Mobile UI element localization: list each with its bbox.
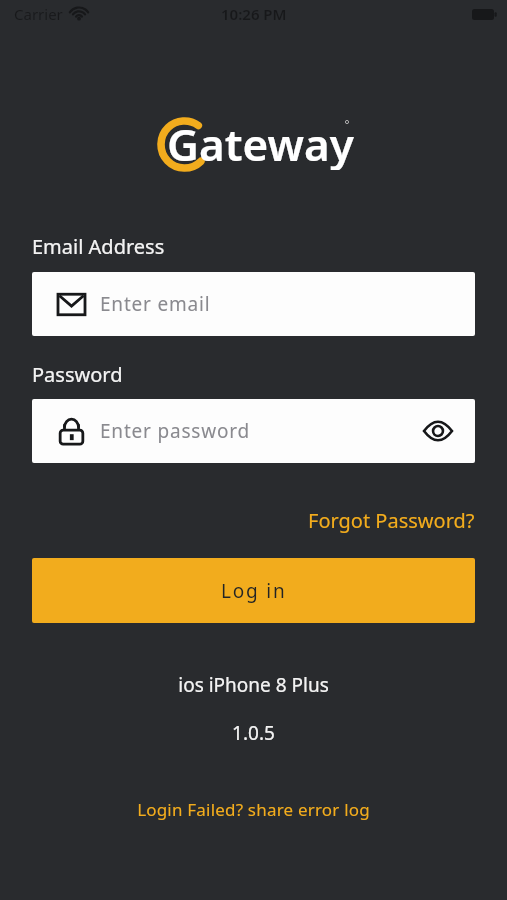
staticText: Enter email [100, 291, 211, 317]
staticText: 1.0.5 [0, 720, 507, 746]
staticText: Log in [221, 578, 287, 604]
staticText: ios iPhone 8 Plus [0, 672, 507, 698]
staticText: Gateway [167, 114, 354, 170]
staticText: Email Address [32, 233, 165, 260]
staticText: Enter password [100, 418, 250, 444]
staticText: Carrier [14, 4, 63, 24]
button[interactable]: Log in [32, 558, 475, 623]
staticText: Password [32, 361, 123, 388]
button[interactable]: Enter password [32, 399, 475, 463]
button[interactable]: Login Failed? share error log [137, 798, 370, 821]
button[interactable] [414, 407, 462, 455]
button[interactable]: Forgot Password? [308, 507, 475, 534]
button[interactable]: Enter email [32, 272, 475, 336]
staticText: 10:26 PM [221, 4, 287, 24]
